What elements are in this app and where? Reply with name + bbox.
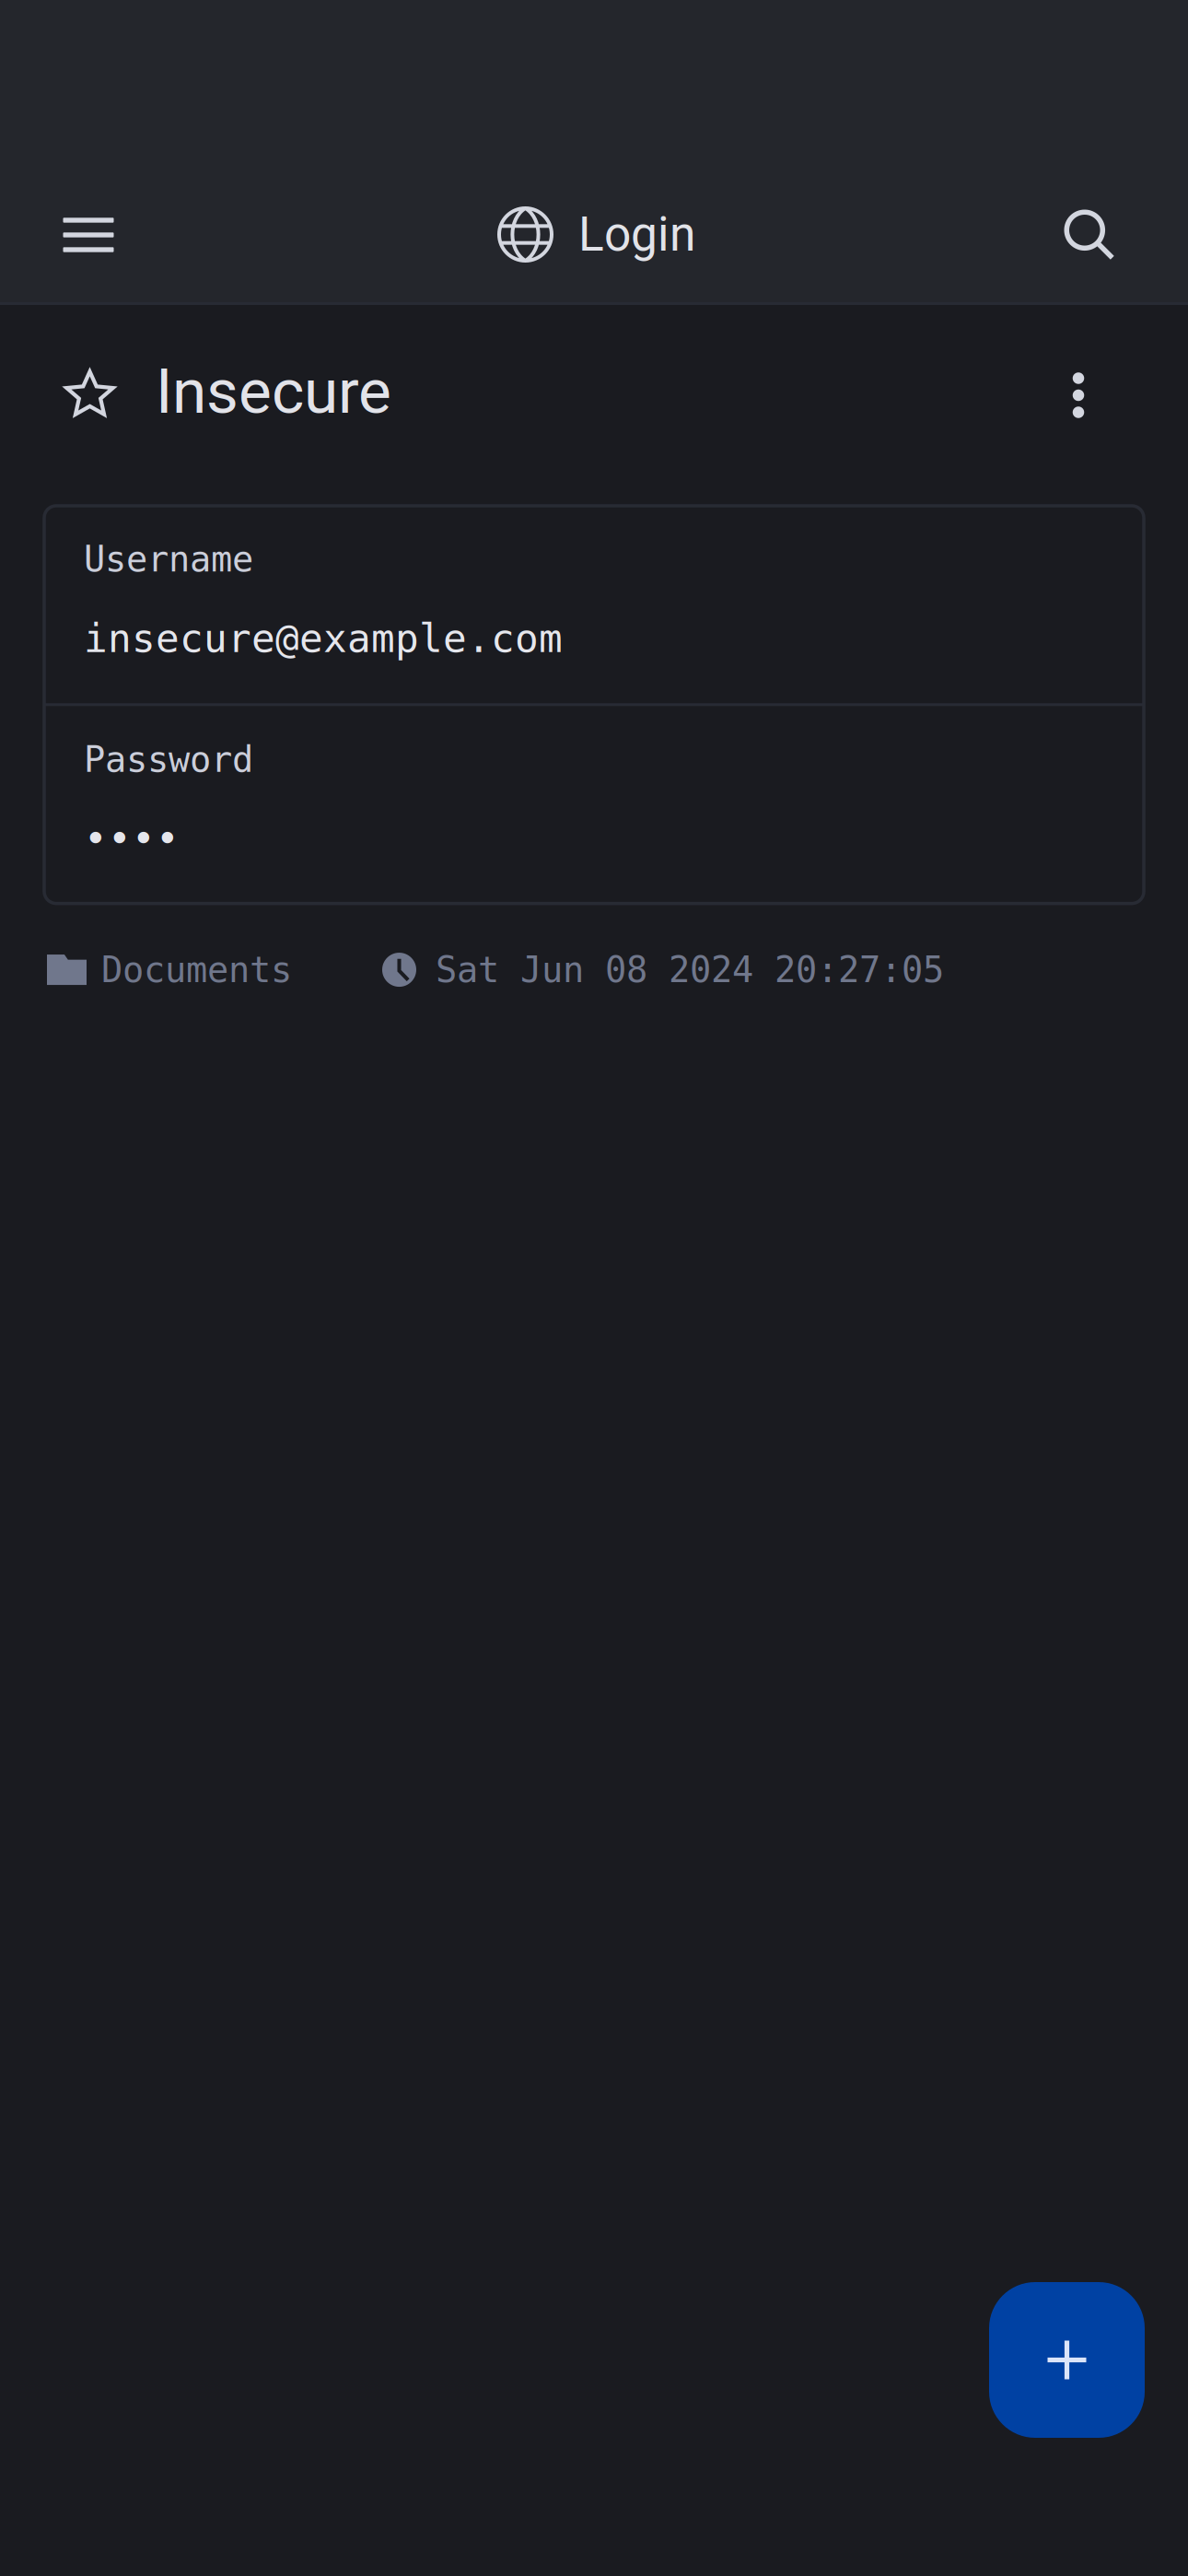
button[interactable]: Open menu: [31, 189, 146, 281]
staticText: Documents: [101, 950, 292, 990]
staticText: insecure@example.com: [84, 616, 563, 661]
button[interactable]: Username: [44, 506, 1144, 703]
button[interactable]: More options: [1036, 349, 1121, 441]
staticText: Password: [84, 739, 253, 780]
button[interactable]: Password: [44, 706, 1144, 903]
button[interactable]: Search: [1032, 189, 1147, 281]
staticText: Sat Jun 08 2024 20:27:05: [436, 950, 944, 990]
staticText: Login: [578, 207, 695, 262]
staticText: Username: [84, 539, 253, 579]
staticText: Insecure: [156, 355, 391, 428]
staticText: ••••: [84, 816, 180, 861]
button[interactable]: Favourite: [62, 349, 118, 441]
button[interactable]: Add entry: [989, 2282, 1145, 2438]
